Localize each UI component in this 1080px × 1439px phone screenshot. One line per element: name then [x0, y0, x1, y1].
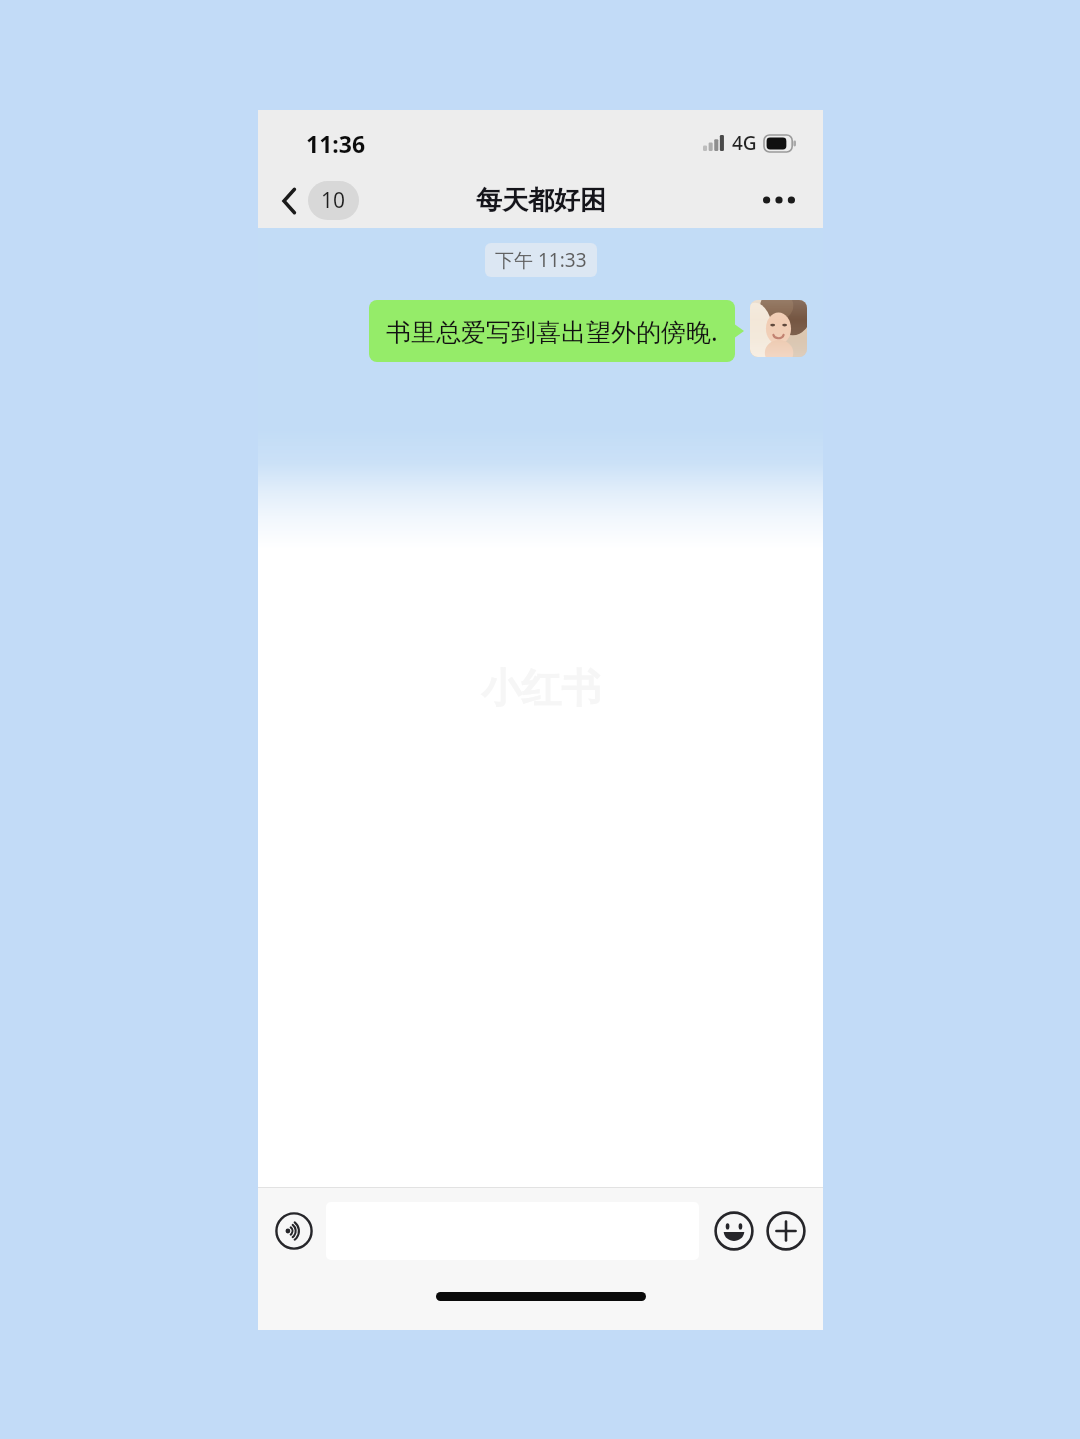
button[interactable]: More actions [763, 1208, 809, 1254]
button[interactable]: Emoji [711, 1208, 757, 1254]
button[interactable]: Back, 10 unread [276, 177, 365, 224]
staticText: 11:36 [306, 128, 366, 159]
button[interactable]: Voice message [272, 1209, 316, 1253]
button[interactable]: Avatar [750, 300, 807, 357]
staticText: 下午 11:33 [495, 247, 587, 273]
staticText: 每天都好困 [476, 184, 606, 217]
staticText: 书里总爱写到喜出望外的傍晚. [386, 314, 718, 348]
staticText: 4G [732, 130, 757, 156]
button[interactable]: 书里总爱写到喜出望外的傍晚. [369, 300, 735, 362]
button[interactable]: More options [755, 188, 803, 212]
staticText: 10 [321, 186, 346, 215]
staticText: 小红书 [481, 663, 601, 713]
